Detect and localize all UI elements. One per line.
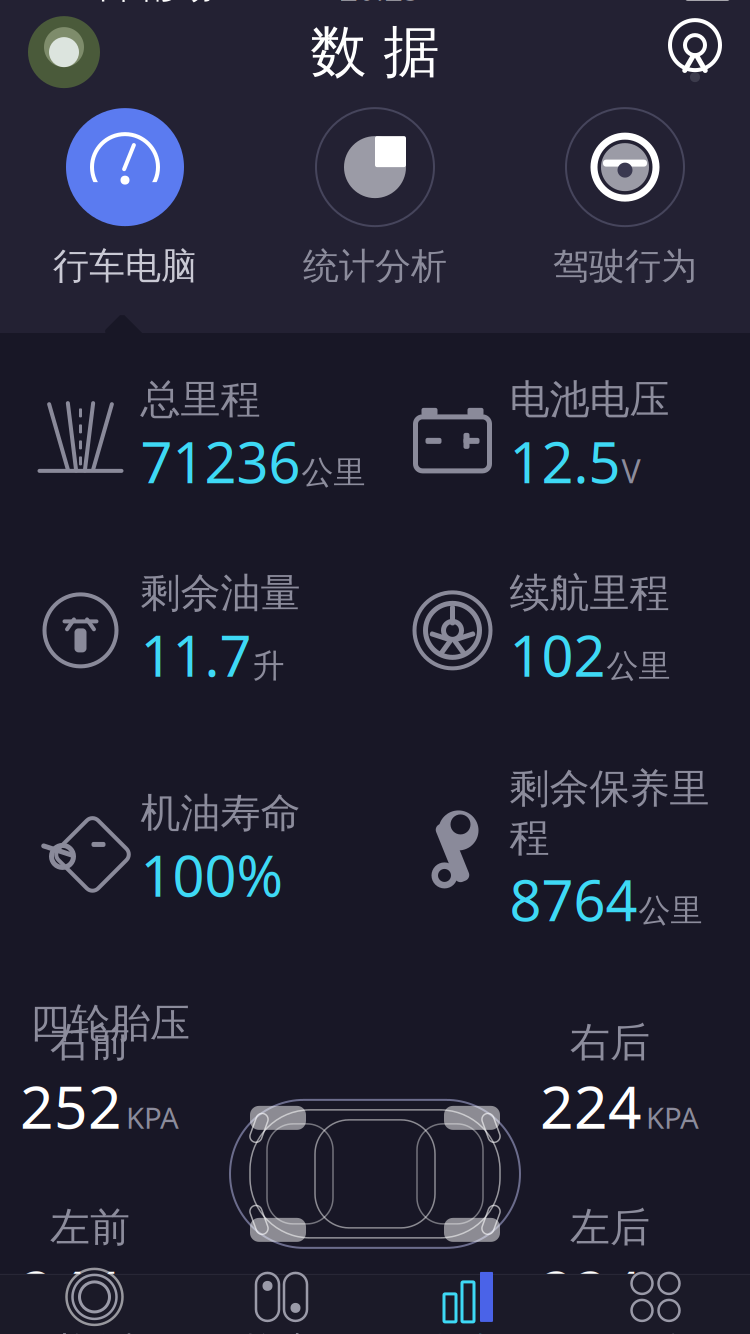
staticText: 公里 — [638, 891, 702, 930]
staticText: KPA — [646, 1283, 699, 1322]
staticText: 公里 — [606, 646, 670, 686]
staticText: 252 — [20, 1067, 122, 1145]
staticText: 244 — [20, 1252, 122, 1330]
staticText: 总里程 — [140, 375, 260, 424]
staticText: 12.5 — [509, 424, 620, 499]
staticText: KPA — [646, 1098, 699, 1137]
staticText: 机油寿命 — [140, 789, 300, 838]
staticText: 中国移动 — [89, 0, 213, 7]
staticText: 224 — [540, 1252, 642, 1330]
staticText: 102 — [509, 618, 605, 692]
button[interactable]: 统计分析 — [250, 108, 500, 288]
button[interactable]: 数 据 — [375, 1274, 562, 1334]
staticText: 20:23 — [339, 0, 420, 9]
button[interactable]: 驾驶行为 — [500, 108, 750, 288]
staticText: 71236 — [140, 424, 300, 499]
staticText: 控 制 — [243, 1329, 319, 1334]
button[interactable]: 服 务 — [562, 1274, 749, 1334]
staticText: 左后 — [570, 1203, 650, 1252]
staticText: 100% — [140, 838, 283, 912]
button[interactable]: 行车电脑 — [0, 108, 250, 288]
button[interactable]: Location — [666, 20, 724, 84]
staticText: 数 据 — [310, 18, 439, 86]
staticText: V — [621, 449, 640, 492]
staticText: 剩余油量 — [140, 569, 300, 618]
staticText: 检 测 — [56, 1329, 132, 1334]
staticText: 行车电脑 — [53, 244, 197, 288]
staticText: 续航里程 — [509, 569, 669, 618]
staticText: 公里 — [301, 453, 365, 492]
staticText: 驾驶行为 — [553, 244, 697, 288]
button[interactable]: 控 制 — [188, 1274, 375, 1334]
staticText: KPA — [126, 1098, 179, 1137]
staticText: 右前 — [50, 1018, 130, 1067]
staticText: 224 — [540, 1067, 642, 1145]
staticText: 统计分析 — [303, 244, 447, 288]
button[interactable]: Profile — [28, 16, 100, 88]
staticText: 左前 — [50, 1203, 130, 1252]
staticText: 8764 — [509, 862, 637, 937]
staticText: 11.7 — [140, 618, 251, 692]
staticText: 四轮胎压 — [30, 999, 190, 1048]
staticText: 右后 — [570, 1018, 650, 1067]
staticText: 升 — [252, 646, 284, 686]
staticText: 剩余保养里程 — [509, 764, 709, 862]
button[interactable]: 检 测 — [1, 1274, 188, 1334]
staticText: 电池电压 — [509, 375, 669, 424]
